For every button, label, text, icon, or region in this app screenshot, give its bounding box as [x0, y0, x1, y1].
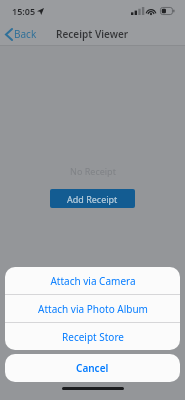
staticText: Back — [14, 27, 37, 41]
staticText: Receipt Viewer — [56, 27, 129, 41]
button[interactable]: Attach via Photo Album — [5, 295, 180, 322]
staticText: Add Receipt — [67, 193, 118, 205]
staticText: Attach via Camera — [50, 274, 136, 288]
button[interactable]: Back — [0, 24, 45, 44]
staticText: 15:05 — [12, 5, 36, 17]
staticText: No Receipt — [70, 165, 116, 177]
button[interactable]: Cancel — [5, 354, 180, 382]
button[interactable]: Add Receipt — [50, 189, 135, 208]
staticText: Receipt Store — [62, 330, 124, 344]
staticText: Attach via Photo Album — [38, 302, 148, 316]
staticText: Cancel — [76, 361, 109, 375]
button[interactable]: Receipt Store — [5, 323, 180, 350]
button[interactable]: Attach via Camera — [5, 267, 180, 294]
